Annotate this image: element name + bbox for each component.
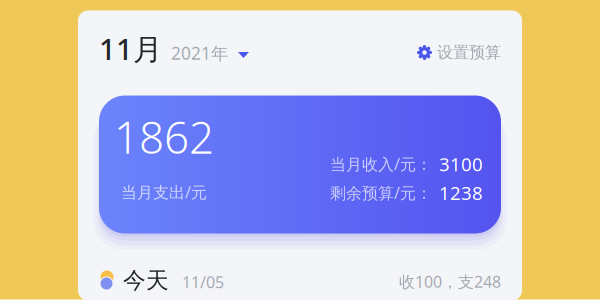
staticText: 3100 bbox=[439, 151, 483, 176]
staticText: 11/05 bbox=[182, 271, 224, 293]
button[interactable]: 11月 bbox=[99, 29, 249, 68]
staticText: 1238 bbox=[439, 180, 483, 205]
staticText: 今天 bbox=[123, 267, 169, 294]
staticText: 收100，支248 bbox=[399, 271, 501, 292]
staticText: 设置预算 bbox=[437, 43, 501, 62]
staticText: 2021年 bbox=[171, 41, 228, 64]
button[interactable]: 设置预算 bbox=[417, 35, 501, 62]
button[interactable]: 今天 bbox=[99, 267, 501, 294]
staticText: 剩余预算/元： bbox=[330, 182, 432, 203]
staticText: 当月收入/元： bbox=[330, 153, 432, 174]
staticText: 1862 bbox=[114, 107, 214, 166]
staticText: 当月支出/元 bbox=[121, 181, 207, 203]
staticText: 11月 bbox=[99, 29, 162, 68]
